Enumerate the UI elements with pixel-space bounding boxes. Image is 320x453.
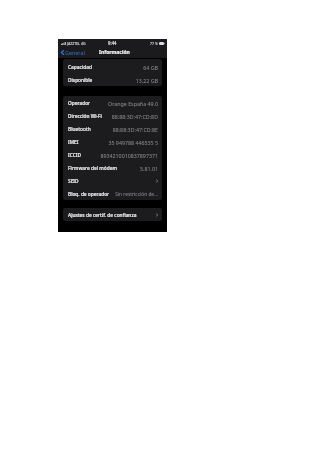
button[interactable]: SEID [63, 174, 162, 187]
button[interactable]: Back to General [61, 49, 85, 56]
staticText: JAZZTEL [67, 41, 80, 46]
staticText: 77 % [150, 41, 158, 46]
staticText: Dirección Wi-Fi [68, 113, 102, 120]
button[interactable]: Bloq. de operador [63, 187, 162, 200]
staticText: Ajustes de certif. de confianza [68, 212, 137, 219]
button[interactable]: Firmware del módem [63, 161, 162, 174]
staticText: Bluetooth [68, 126, 91, 133]
button[interactable]: Ajustes de certif. de confianza [63, 208, 162, 221]
staticText: Operador [68, 100, 91, 107]
staticText: Sin restricción de... [115, 191, 158, 198]
staticText: Bloq. de operador [68, 191, 110, 198]
staticText: 9:44 [108, 40, 117, 46]
button[interactable]: Disponible [63, 73, 162, 86]
button[interactable]: ICCID [63, 148, 162, 161]
staticText: 8934210010837897371 [100, 152, 158, 159]
staticText: Información [99, 49, 130, 56]
staticText: Firmware del módem [68, 165, 117, 172]
staticText: 35 949788 446535 5 [108, 139, 158, 146]
staticText: ICCID [68, 152, 81, 159]
staticText: 64 GB [143, 64, 158, 71]
staticText: 4G [81, 41, 86, 46]
staticText: 88:88:3D:47:CD:8E [112, 126, 158, 133]
button[interactable]: IMEI [63, 135, 162, 148]
staticText: 88:88:3D:47:CD:8D [111, 113, 158, 120]
button[interactable]: Dirección Wi-Fi [63, 109, 162, 122]
button[interactable]: Bluetooth [63, 122, 162, 135]
staticText: General [65, 49, 85, 56]
button[interactable]: Operador [63, 96, 162, 109]
staticText: IMEI [68, 139, 79, 146]
staticText: 13,22 GB [135, 77, 158, 84]
button[interactable]: Capacidad [63, 59, 162, 73]
staticText: Disponible [68, 77, 93, 84]
staticText: Orange España 49.0 [108, 100, 158, 107]
staticText: SEID [68, 178, 79, 185]
staticText: Capacidad [68, 64, 92, 71]
staticText: 5.81.01 [140, 165, 158, 172]
